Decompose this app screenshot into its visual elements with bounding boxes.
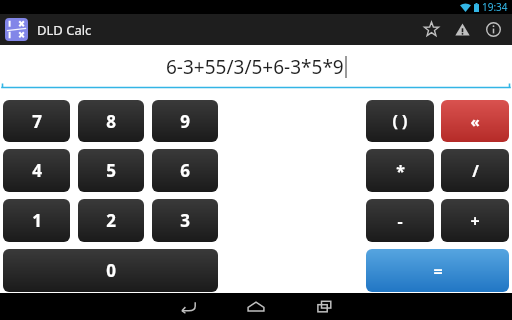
button[interactable]: + — [441, 199, 509, 242]
staticText: / — [472, 160, 479, 182]
button[interactable]: 1 — [3, 199, 70, 242]
button[interactable]: « — [441, 100, 509, 142]
staticText: 6 — [180, 159, 190, 182]
staticText: DLD Calc — [37, 21, 92, 39]
button[interactable]: Home — [233, 293, 279, 320]
staticText: 3 — [180, 209, 190, 232]
button[interactable]: 2 — [78, 199, 144, 242]
button[interactable]: 7 — [3, 100, 70, 142]
staticText: 6-3+55/3/5+6-3*5*9 — [166, 54, 344, 80]
staticText: ( ) — [392, 110, 408, 132]
button[interactable]: * — [366, 149, 434, 192]
button[interactable]: 0 — [3, 249, 218, 292]
staticText: 5 — [106, 159, 116, 182]
staticText: 0 — [106, 259, 116, 282]
staticText: « — [470, 111, 480, 131]
button[interactable]: = — [366, 249, 509, 292]
button[interactable]: ( ) — [366, 100, 434, 142]
button[interactable]: / — [441, 149, 509, 192]
button[interactable]: Recent apps — [301, 293, 347, 320]
button[interactable]: 9 — [152, 100, 218, 142]
staticText: + — [470, 210, 480, 232]
button[interactable]: 8 — [78, 100, 144, 142]
button[interactable]: App icon — [5, 18, 28, 41]
staticText: 8 — [106, 110, 116, 133]
button[interactable]: Warning — [447, 14, 478, 45]
button[interactable]: Info — [478, 14, 509, 45]
button[interactable]: Favorite — [416, 14, 447, 45]
staticText: - — [397, 210, 403, 232]
button[interactable]: 5 — [78, 149, 144, 192]
button[interactable]: - — [366, 199, 434, 242]
button[interactable]: 6 — [152, 149, 218, 192]
staticText: 2 — [106, 209, 116, 232]
staticText: * — [396, 160, 405, 182]
button[interactable]: 3 — [152, 199, 218, 242]
button[interactable]: Back — [165, 293, 211, 320]
staticText: 9 — [180, 110, 190, 133]
staticText: 19:34 — [482, 0, 508, 14]
staticText: 4 — [32, 159, 42, 182]
staticText: = — [433, 260, 443, 282]
button[interactable]: 4 — [3, 149, 70, 192]
staticText: 7 — [32, 110, 42, 133]
staticText: 1 — [32, 209, 42, 232]
